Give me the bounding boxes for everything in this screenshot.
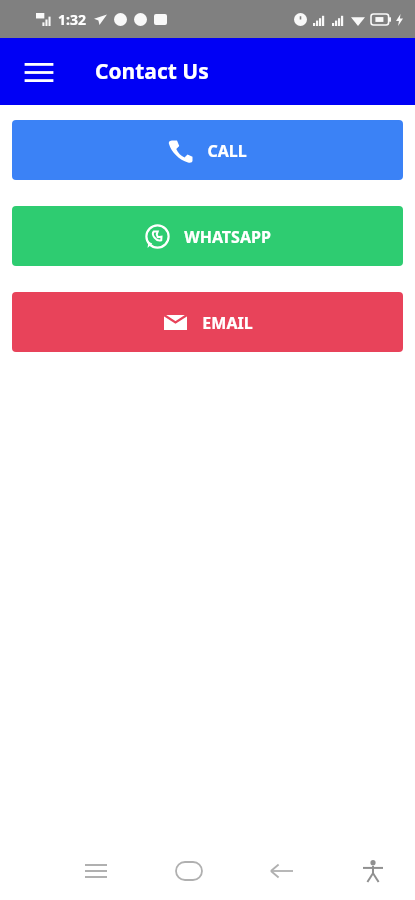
- button[interactable]: Back: [257, 847, 305, 895]
- staticText: CALL: [207, 140, 247, 162]
- button[interactable]: Recent apps: [72, 847, 120, 895]
- button[interactable]: WHATSAPP: [12, 206, 403, 266]
- button[interactable]: Home: [165, 847, 213, 895]
- staticText: 1:32: [58, 10, 86, 29]
- button[interactable]: Open navigation menu: [13, 46, 65, 98]
- button[interactable]: EMAIL: [12, 292, 403, 352]
- button[interactable]: Accessibility: [349, 847, 397, 895]
- staticText: EMAIL: [202, 312, 253, 334]
- staticText: Contact Us: [95, 57, 209, 86]
- button[interactable]: CALL: [12, 120, 403, 180]
- staticText: WHATSAPP: [184, 226, 271, 248]
